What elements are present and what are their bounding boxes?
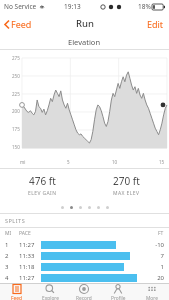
staticText: ELEV GAIN	[28, 190, 57, 197]
staticText: No Service	[4, 2, 37, 11]
staticText: 11:18	[19, 263, 41, 271]
staticText: 10	[112, 159, 118, 165]
staticText: SPLITS	[5, 217, 26, 224]
other: Explore	[45, 284, 55, 294]
staticText: 275	[12, 55, 20, 61]
button[interactable]: Edit	[142, 15, 169, 33]
staticText: Profile	[111, 295, 126, 300]
button[interactable]: 3	[0, 261, 169, 272]
staticText: Record	[76, 295, 92, 300]
staticText: Explore	[42, 295, 59, 300]
staticText: 225	[12, 91, 20, 97]
button[interactable]: Record	[67, 284, 101, 300]
button[interactable]: Feed	[0, 15, 36, 33]
button[interactable]: Explore	[33, 284, 67, 300]
staticText: 250	[12, 73, 20, 79]
staticText: 11:27	[19, 241, 41, 249]
staticText: 3	[5, 263, 19, 271]
staticText: 200	[12, 108, 20, 114]
button[interactable]: Profile	[101, 284, 135, 300]
staticText: Edit	[147, 18, 164, 30]
staticText: Feed	[11, 295, 22, 300]
button[interactable]: 2	[0, 250, 169, 261]
staticText: 7	[160, 252, 164, 260]
staticText: 2	[5, 252, 19, 260]
other: More	[147, 284, 157, 294]
staticText: MAX ELEV	[113, 190, 140, 197]
staticText: 11:27	[19, 274, 41, 282]
staticText: 1	[160, 263, 164, 271]
staticText: Feed	[11, 18, 32, 30]
staticText: 4	[5, 274, 19, 282]
staticText: 150	[12, 144, 20, 150]
other: Feed	[12, 284, 22, 294]
staticText: 18%	[138, 2, 151, 11]
staticText: 270 ft	[113, 174, 140, 188]
staticText: 19:13	[64, 2, 81, 11]
staticText: 1	[5, 241, 19, 249]
staticText: 175	[12, 126, 20, 132]
button[interactable]: More	[135, 284, 169, 300]
staticText: MI	[5, 230, 19, 237]
staticText: 11:33	[19, 252, 41, 260]
button[interactable]: 4	[0, 272, 169, 283]
staticText: 476 ft	[29, 174, 56, 188]
staticText: 5	[67, 159, 70, 165]
staticText: 15	[159, 159, 165, 165]
other: Profile	[113, 284, 123, 294]
button[interactable]: 1	[0, 239, 169, 250]
staticText: Elevation	[68, 37, 101, 47]
staticText: mi	[20, 159, 26, 165]
staticText: Run	[76, 17, 94, 30]
staticText: FT	[158, 230, 164, 237]
other: Record	[79, 284, 89, 294]
staticText: PACE	[19, 230, 43, 237]
staticText: More	[146, 295, 158, 300]
button[interactable]: Feed	[0, 284, 33, 300]
staticText: -10	[155, 241, 164, 249]
staticText: 20	[157, 274, 164, 282]
